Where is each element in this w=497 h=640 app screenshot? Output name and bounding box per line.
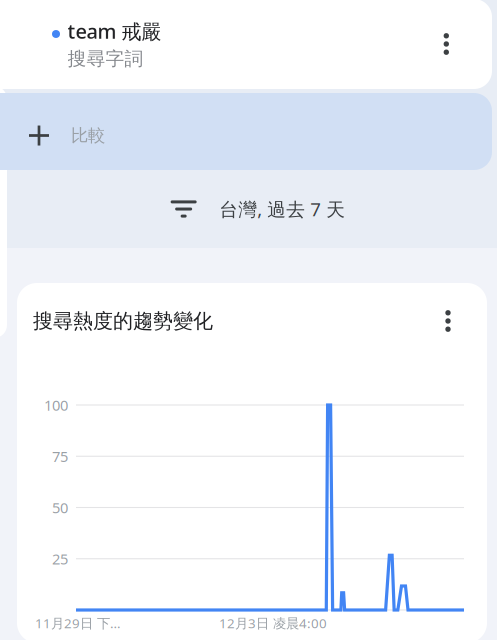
staticText: 搜尋熱度的趨勢變化 [33, 309, 213, 333]
staticText: 100 [44, 395, 68, 415]
staticText: 比較 [71, 125, 105, 146]
staticText: 25 [52, 549, 68, 568]
staticText: team 戒嚴 [67, 18, 161, 44]
button[interactable]: 台灣, 過去 7 天 [0, 170, 497, 248]
button[interactable]: 更多選項 [433, 299, 463, 343]
button[interactable]: 比較 [0, 93, 492, 170]
staticText: 台灣, 過去 7 天 [219, 197, 345, 221]
staticText: 11月29日 下… [35, 614, 121, 632]
staticText: 50 [52, 498, 68, 517]
staticText: 搜尋字詞 [67, 47, 143, 70]
staticText: 12月3日 凌晨4:00 [219, 614, 327, 632]
staticText: 75 [52, 446, 68, 466]
button[interactable]: team 戒嚴 [0, 0, 492, 89]
